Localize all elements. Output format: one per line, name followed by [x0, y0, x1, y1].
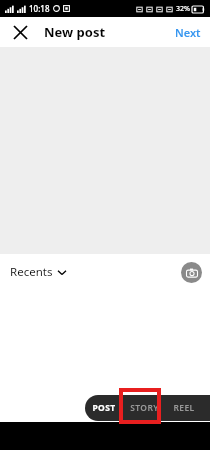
- staticText: STORY: [130, 402, 159, 414]
- button[interactable]: Close: [9, 21, 31, 43]
- button[interactable]: REEL: [166, 395, 202, 421]
- staticText: 10:18: [29, 3, 50, 14]
- button[interactable]: POST: [85, 395, 123, 421]
- staticText: Recents: [10, 264, 53, 280]
- staticText: New post: [44, 23, 106, 41]
- button[interactable]: Open camera: [181, 262, 202, 283]
- staticText: Next: [175, 25, 201, 40]
- button[interactable]: STORY: [123, 395, 166, 421]
- button[interactable]: Recents: [6, 260, 70, 284]
- button[interactable]: Next: [166, 20, 210, 45]
- staticText: POST: [92, 402, 116, 414]
- staticText: 32%: [176, 4, 190, 14]
- staticText: REEL: [173, 402, 195, 414]
